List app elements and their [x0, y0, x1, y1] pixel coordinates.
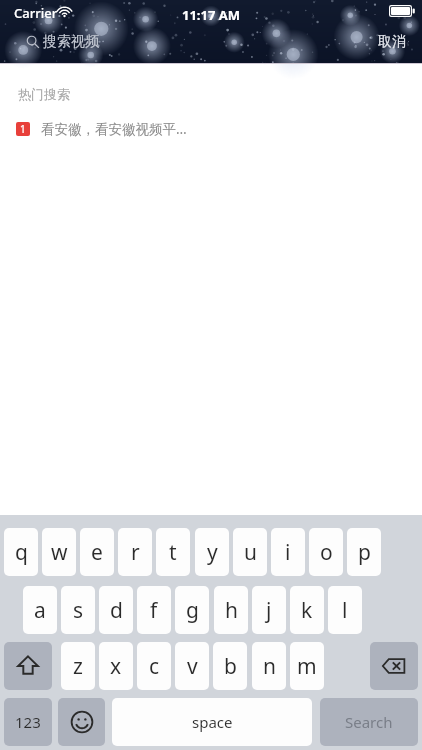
staticText: t: [169, 538, 177, 567]
staticText: y: [207, 538, 218, 567]
staticText: c: [149, 652, 160, 681]
staticText: b: [224, 652, 237, 681]
button[interactable]: t: [156, 528, 190, 576]
staticText: 1: [20, 122, 26, 136]
staticText: q: [15, 538, 28, 567]
staticText: z: [73, 652, 83, 681]
button[interactable]: q: [4, 528, 38, 576]
staticText: l: [342, 596, 348, 625]
staticText: e: [91, 538, 103, 567]
button[interactable]: 123: [4, 698, 52, 746]
button[interactable]: n: [252, 642, 286, 690]
button[interactable]: a: [23, 586, 57, 634]
button[interactable]: h: [214, 586, 248, 634]
button[interactable]: Backspace: [370, 642, 418, 690]
button[interactable]: p: [347, 528, 381, 576]
button[interactable]: Search: [320, 698, 418, 746]
button[interactable]: s: [61, 586, 95, 634]
staticText: h: [225, 596, 238, 625]
staticText: 11:17 AM: [182, 6, 241, 24]
staticText: p: [358, 538, 371, 567]
button[interactable]: c: [137, 642, 171, 690]
staticText: j: [266, 596, 272, 625]
button[interactable]: k: [290, 586, 324, 634]
staticText: s: [73, 596, 84, 625]
staticText: a: [34, 596, 46, 625]
staticText: f: [150, 596, 158, 625]
button[interactable]: l: [328, 586, 362, 634]
staticText: n: [263, 652, 276, 681]
staticText: r: [131, 538, 140, 567]
button[interactable]: i: [271, 528, 305, 576]
button[interactable]: g: [175, 586, 209, 634]
staticText: k: [301, 596, 313, 625]
button[interactable]: r: [118, 528, 152, 576]
staticText: g: [186, 596, 199, 625]
staticText: x: [110, 652, 122, 681]
button[interactable]: v: [175, 642, 209, 690]
button[interactable]: m: [290, 642, 324, 690]
staticText: 123: [15, 712, 41, 732]
button[interactable]: Shift: [4, 642, 52, 690]
staticText: i: [285, 538, 291, 567]
button[interactable]: 取消: [378, 30, 418, 54]
button[interactable]: u: [233, 528, 267, 576]
staticText: 热门搜索: [18, 86, 70, 102]
staticText: u: [244, 538, 257, 567]
staticText: m: [297, 652, 317, 681]
button[interactable]: space: [112, 698, 312, 746]
staticText: o: [320, 538, 333, 567]
staticText: Carrier: [14, 4, 58, 22]
staticText: Search: [345, 712, 393, 732]
staticText: 搜索视频: [43, 33, 99, 51]
staticText: 看安徽，看安徽视频平…: [41, 120, 187, 138]
staticText: space: [192, 712, 233, 732]
button[interactable]: z: [61, 642, 95, 690]
button[interactable]: Emoji keyboard: [58, 698, 105, 746]
button[interactable]: x: [99, 642, 133, 690]
button[interactable]: j: [252, 586, 286, 634]
button[interactable]: y: [195, 528, 229, 576]
button[interactable]: d: [99, 586, 133, 634]
button[interactable]: 搜索视频: [26, 30, 216, 54]
staticText: v: [187, 652, 198, 681]
button[interactable]: 1: [0, 110, 422, 148]
button[interactable]: w: [42, 528, 76, 576]
button[interactable]: e: [80, 528, 114, 576]
staticText: 取消: [378, 33, 406, 51]
staticText: d: [110, 596, 123, 625]
button[interactable]: b: [213, 642, 247, 690]
button[interactable]: o: [309, 528, 343, 576]
staticText: w: [51, 538, 68, 567]
button[interactable]: f: [137, 586, 171, 634]
